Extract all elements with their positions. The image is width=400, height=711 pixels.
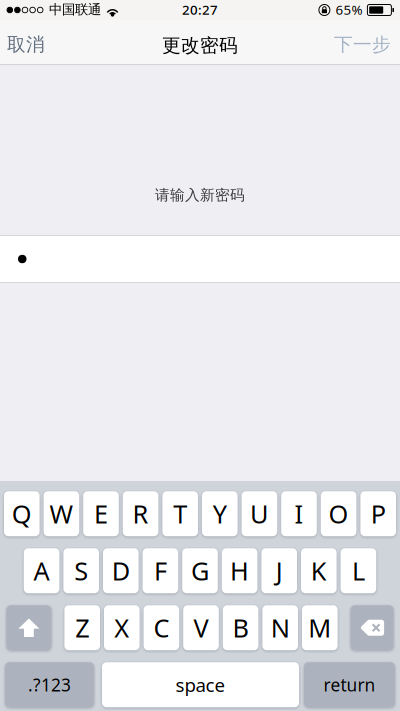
staticText: 下一步 <box>334 33 391 56</box>
staticText: S <box>74 554 88 587</box>
button[interactable]: Delete <box>351 605 394 650</box>
staticText: Q <box>12 497 32 530</box>
staticText: 20:27 <box>182 1 218 18</box>
staticText: T <box>173 497 187 530</box>
button[interactable]: F <box>143 548 178 593</box>
button[interactable]: L <box>341 548 376 593</box>
button[interactable]: space <box>102 662 299 707</box>
button[interactable]: J <box>261 548 297 593</box>
button[interactable]: 取消 <box>0 20 61 65</box>
button[interactable]: .?123 <box>5 662 94 707</box>
button[interactable]: K <box>301 548 337 593</box>
button[interactable]: Shift <box>6 605 51 650</box>
button[interactable]: C <box>144 605 179 650</box>
staticText: 请输入新密码 <box>155 186 245 204</box>
staticText: Z <box>75 611 89 644</box>
button[interactable]: E <box>83 491 119 536</box>
button[interactable]: W <box>44 491 79 536</box>
button[interactable]: Q <box>4 491 40 536</box>
staticText: N <box>271 611 290 644</box>
staticText: R <box>133 497 149 530</box>
staticText: P <box>371 497 386 530</box>
button[interactable]: I <box>281 491 317 536</box>
staticText: return <box>323 673 375 696</box>
staticText: G <box>191 554 209 587</box>
staticText: O <box>329 497 349 530</box>
staticText: E <box>94 497 108 530</box>
button[interactable]: H <box>222 548 257 593</box>
button[interactable]: Z <box>64 605 100 650</box>
button[interactable]: R <box>123 491 158 536</box>
staticText: space <box>175 672 225 697</box>
button[interactable]: N <box>262 605 298 650</box>
button[interactable]: Y <box>202 491 238 536</box>
staticText: C <box>153 611 169 644</box>
staticText: D <box>112 554 130 587</box>
staticText: 65% <box>335 1 362 18</box>
staticText: K <box>311 554 327 587</box>
staticText: F <box>154 554 167 587</box>
staticText: A <box>34 554 50 587</box>
button[interactable]: X <box>104 605 140 650</box>
button[interactable]: U <box>242 491 277 536</box>
staticText: 更改密码 <box>162 34 238 57</box>
staticText: I <box>294 497 303 530</box>
staticText: L <box>352 554 365 587</box>
staticText: W <box>49 497 73 530</box>
button[interactable]: 下一步 <box>318 20 400 65</box>
button[interactable]: G <box>182 548 218 593</box>
button[interactable]: P <box>360 491 396 536</box>
staticText: M <box>308 611 331 644</box>
button[interactable]: return <box>304 662 395 707</box>
staticText: 中国联通 <box>49 1 101 18</box>
button[interactable]: V <box>183 605 219 650</box>
button[interactable]: S <box>63 548 99 593</box>
staticText: X <box>114 611 129 644</box>
button[interactable]: B <box>223 605 258 650</box>
staticText: Y <box>213 497 227 530</box>
staticText: U <box>250 497 269 530</box>
staticText: B <box>233 611 249 644</box>
button[interactable]: New password <box>0 235 400 283</box>
button[interactable]: T <box>162 491 198 536</box>
staticText: H <box>230 554 249 587</box>
staticText: 取消 <box>7 33 45 56</box>
staticText: .?123 <box>28 673 71 696</box>
button[interactable]: M <box>302 605 338 650</box>
staticText: J <box>276 554 283 587</box>
button[interactable]: D <box>103 548 139 593</box>
button[interactable]: A <box>24 548 59 593</box>
staticText: V <box>193 611 208 644</box>
button[interactable]: O <box>321 491 356 536</box>
